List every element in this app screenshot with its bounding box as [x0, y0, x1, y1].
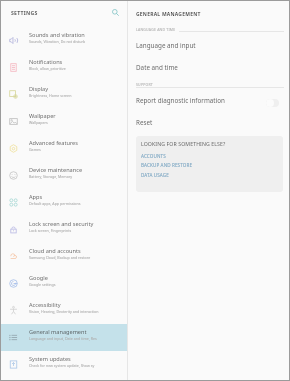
- staticText: BACKUP AND RESTORE: [141, 162, 193, 168]
- staticText: Notifications: [29, 58, 63, 66]
- staticText: Accessibility: [29, 301, 61, 309]
- button[interactable]: Reset: [128, 114, 289, 136]
- staticText: Games: [29, 147, 41, 152]
- staticText: Battery, Storage, Memory: [29, 174, 73, 179]
- staticText: SUPPORT: [136, 82, 153, 87]
- staticText: Language and input, Date and time, Res: [29, 336, 97, 341]
- staticText: Vision, Hearing, Dexterity and interacti…: [29, 309, 99, 314]
- staticText: Google settings: [29, 282, 56, 287]
- button[interactable]: Apps: [1, 189, 127, 216]
- button[interactable]: System updates: [1, 351, 127, 378]
- staticText: Wallpaper: [29, 112, 56, 120]
- staticText: LOOKING FOR SOMETHING ELSE?: [141, 140, 226, 147]
- staticText: Sounds and vibration: [29, 31, 85, 39]
- button[interactable]: Wallpaper: [1, 108, 127, 135]
- button[interactable]: Date and time: [128, 59, 289, 81]
- button[interactable]: Google: [1, 270, 127, 297]
- button[interactable]: Advanced features: [1, 135, 127, 162]
- staticText: Default apps, App permissions: [29, 201, 81, 206]
- button[interactable]: Search: [106, 3, 124, 21]
- staticText: Wallpapers: [29, 120, 48, 125]
- staticText: Report diagnostic information: [136, 96, 225, 105]
- staticText: GENERAL MANAGEMENT: [136, 11, 201, 18]
- button[interactable]: Lock screen and security: [1, 216, 127, 243]
- staticText: Device maintenance: [29, 166, 83, 174]
- staticText: Block, allow, prioritize: [29, 66, 66, 71]
- staticText: ACCOUNTS: [141, 153, 166, 159]
- button[interactable]: Device maintenance: [1, 162, 127, 189]
- staticText: Samsung Cloud, Backup and restore: [29, 255, 91, 260]
- staticText: Language and input: [136, 41, 196, 50]
- staticText: Cloud and accounts: [29, 247, 81, 255]
- button[interactable]: General management: [1, 324, 127, 351]
- button[interactable]: ACCOUNTS: [136, 151, 283, 161]
- staticText: Apps: [29, 193, 43, 201]
- staticText: DATA USAGE: [141, 172, 169, 178]
- button[interactable]: BACKUP AND RESTORE: [136, 160, 283, 170]
- staticText: Reset: [136, 118, 153, 127]
- staticText: Google: [29, 274, 48, 282]
- staticText: Lock screen, Fingerprints: [29, 228, 72, 233]
- staticText: Sounds, Vibration, Do not disturb: [29, 39, 86, 44]
- staticText: LANGUAGE AND TIME: [136, 27, 176, 32]
- staticText: Lock screen and security: [29, 220, 94, 228]
- staticText: Advanced features: [29, 139, 78, 147]
- staticText: SETTINGS: [11, 9, 38, 16]
- staticText: Check for new system update, Show sy: [29, 363, 95, 368]
- staticText: Brightness, Home screen: [29, 93, 72, 98]
- button[interactable]: Cloud and accounts: [1, 243, 127, 270]
- button[interactable]: Display: [1, 81, 127, 108]
- button[interactable]: Notifications: [1, 54, 127, 81]
- button[interactable]: Sounds and vibration: [1, 27, 127, 54]
- staticText: General management: [29, 328, 87, 336]
- staticText: Date and time: [136, 63, 178, 72]
- button[interactable]: Accessibility: [1, 297, 127, 324]
- button[interactable]: DATA USAGE: [136, 170, 283, 180]
- button[interactable]: Report diagnostic information: [128, 92, 289, 114]
- staticText: System updates: [29, 355, 71, 363]
- button[interactable]: Language and input: [128, 37, 289, 59]
- staticText: Display: [29, 85, 49, 93]
